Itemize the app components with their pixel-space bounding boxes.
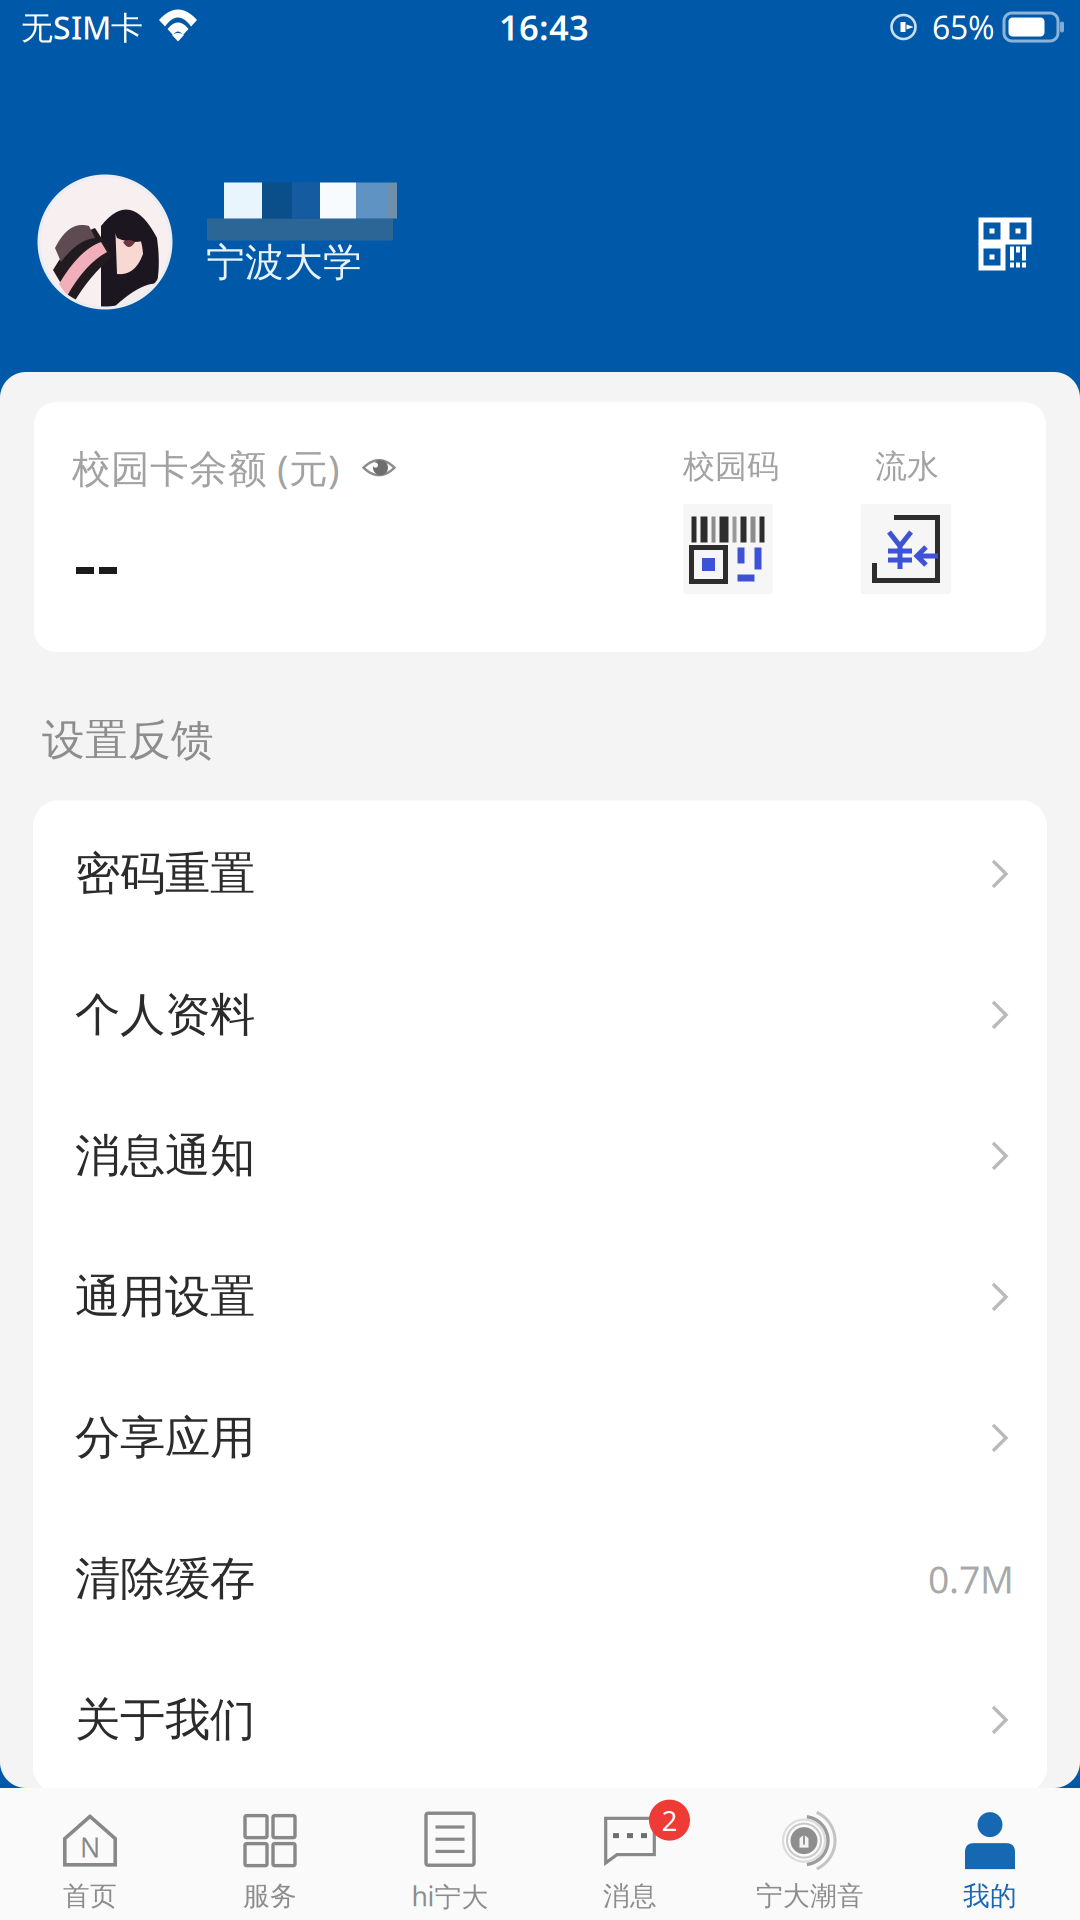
staticText: 消息通知 [75,1128,255,1184]
staticText: 校园卡余额 (元) [72,442,340,493]
staticText: 65% [932,6,995,48]
button[interactable]: hi宁大 [360,1786,540,1920]
staticText: 服务 [243,1880,297,1912]
staticText: 2 [661,1801,677,1839]
staticText: 16:43 [499,4,589,50]
staticText: 密码重置 [75,846,255,902]
staticText: 清除缓存 [75,1551,255,1607]
staticText: 设置反馈 [42,714,214,766]
button[interactable]: 2 [540,1788,720,1920]
staticText: 0.7M [928,1554,1014,1604]
button[interactable]: 通用设置 [33,1226,1047,1367]
staticText: hi宁大 [411,1878,488,1914]
button[interactable]: 清除缓存 [33,1508,1047,1649]
staticText: 宁波大学 [206,239,362,286]
button[interactable]: 分享应用 [33,1367,1047,1508]
staticText: 宁大潮音 [756,1880,864,1912]
button[interactable]: 关于我们 [33,1649,1047,1790]
staticText: 校园码 [683,447,779,486]
button[interactable]: 校园码 [683,402,775,652]
staticText: 我的 [963,1880,1017,1912]
staticText: 通用设置 [75,1269,255,1325]
button[interactable]: 消息通知 [33,1085,1047,1226]
staticText: 无SIM卡 [21,6,143,48]
button[interactable]: 扫一扫二维码 [957,176,1053,288]
staticText: 消息 [603,1880,657,1912]
button[interactable]: 宁大潮音 [720,1788,900,1920]
staticText: N [80,1829,100,1865]
staticText: 关于我们 [75,1692,255,1748]
button[interactable]: 服务 [180,1788,360,1920]
button[interactable]: 个人资料 [33,944,1047,1085]
staticText: 分享应用 [75,1410,255,1466]
staticText: 个人资料 [75,987,255,1043]
staticText: 流水 [875,447,939,486]
button[interactable]: N [0,1788,180,1920]
staticText: 首页 [63,1880,117,1912]
button[interactable]: 密码重置 [33,803,1047,944]
button[interactable]: 流水 [861,402,953,652]
button[interactable]: 显示余额 [362,455,396,481]
button[interactable]: 我的 [900,1788,1080,1920]
